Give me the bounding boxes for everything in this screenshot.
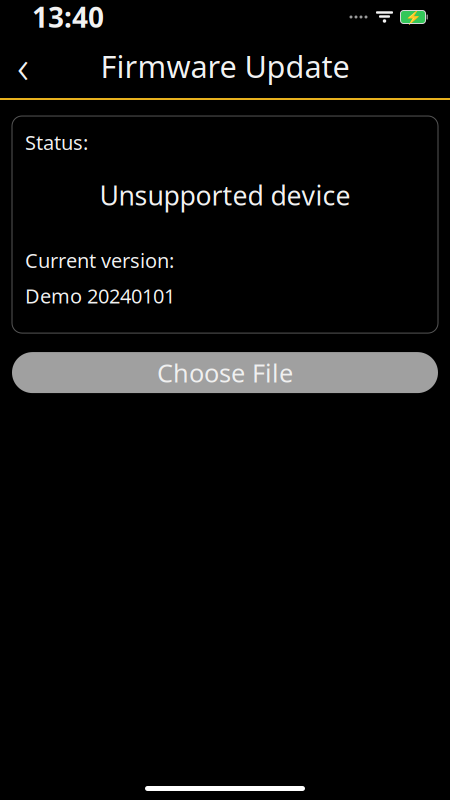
staticText: Demo 20240101 <box>25 282 175 309</box>
staticText: ⚡ <box>404 9 421 25</box>
staticText: 13:40 <box>32 0 104 36</box>
staticText: ‹ <box>17 36 29 96</box>
staticText: Unsupported device <box>99 178 350 213</box>
button[interactable]: Choose File <box>12 352 438 393</box>
staticText: Status: <box>25 129 88 156</box>
button[interactable]: Back <box>0 39 46 93</box>
staticText: Firmware Update <box>100 46 349 86</box>
staticText: Choose File <box>157 356 293 389</box>
staticText: Current version: <box>25 247 174 274</box>
